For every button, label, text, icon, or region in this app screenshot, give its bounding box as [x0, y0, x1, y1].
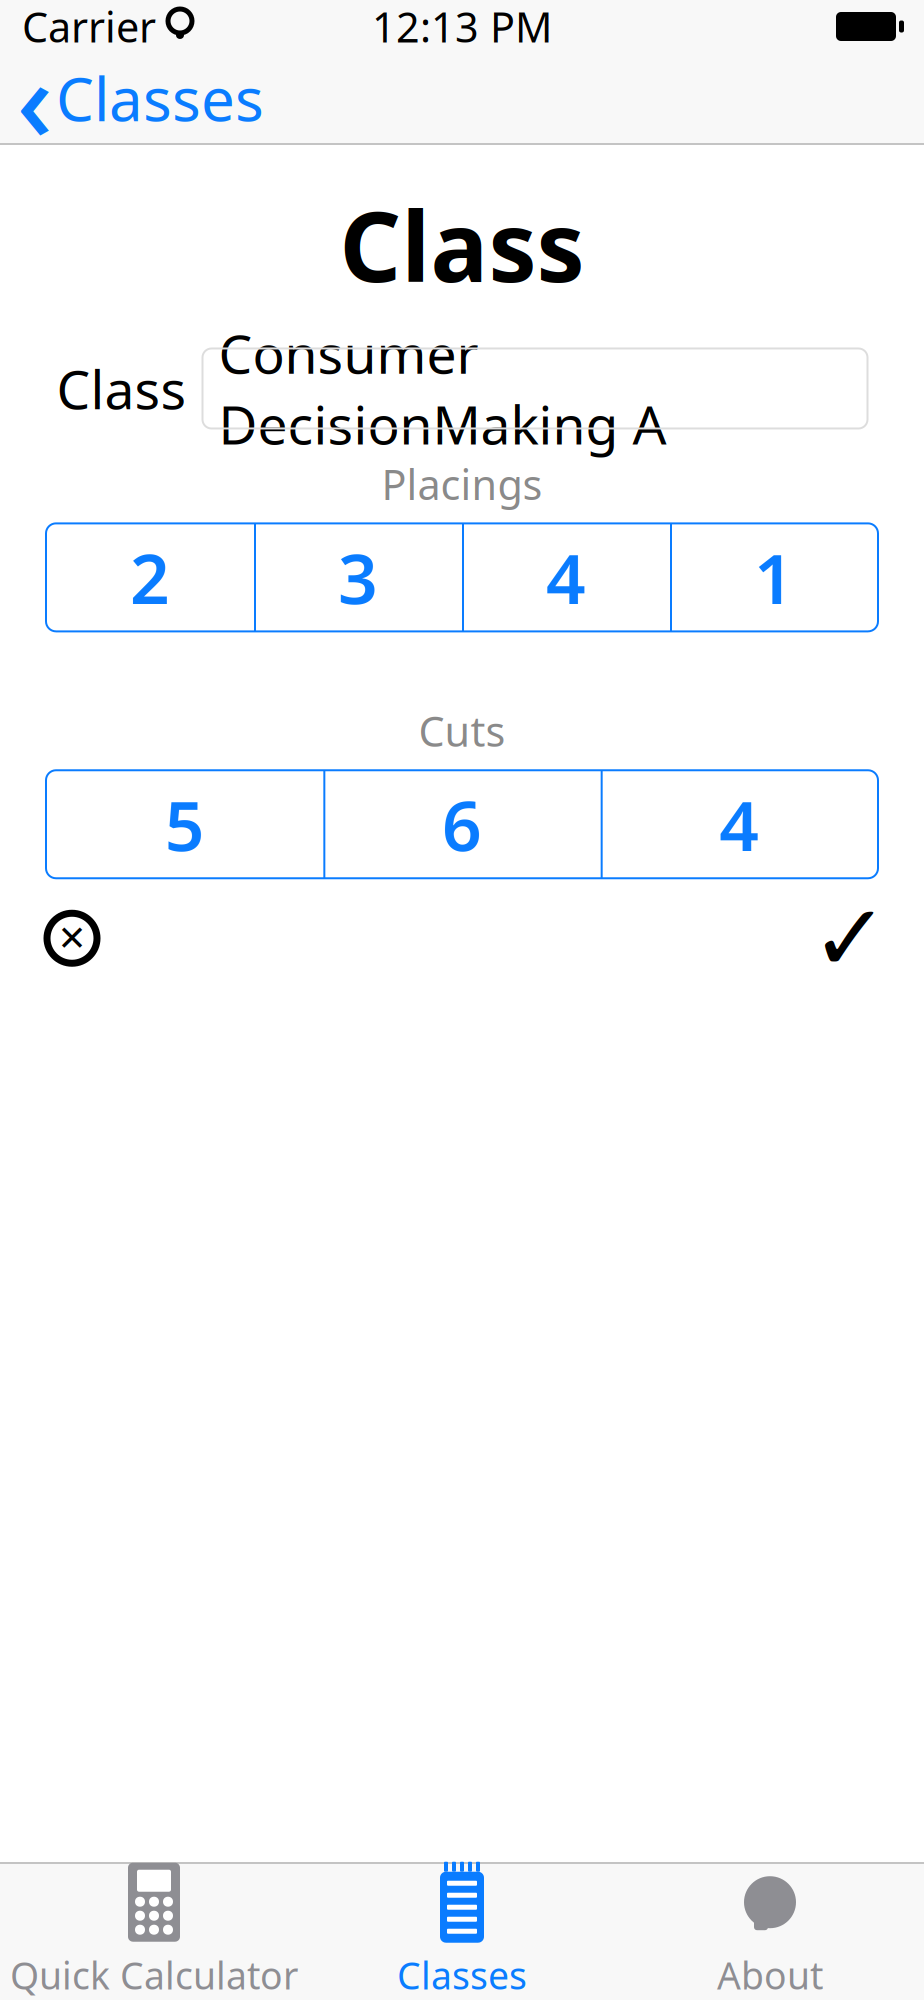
staticText: Cuts	[418, 703, 505, 758]
staticText: 2	[130, 531, 170, 623]
staticText: 4	[719, 778, 759, 870]
staticText: Quick Calculator	[10, 1950, 298, 2000]
button[interactable]: 4	[462, 523, 670, 631]
staticText: Carrier	[22, 0, 156, 54]
staticText: Class	[56, 353, 186, 424]
staticText: 4	[546, 531, 586, 623]
staticText: 3	[338, 531, 378, 623]
staticText: Placings	[381, 456, 542, 511]
button[interactable]: About	[616, 1864, 924, 2000]
staticText: Consumer DecisionMaking A	[218, 318, 666, 459]
button[interactable]: ‹	[0, 53, 284, 143]
staticText: 1	[754, 531, 794, 623]
button[interactable]: 2	[46, 523, 254, 631]
staticText: 5	[165, 778, 205, 870]
staticText: Classes	[397, 1950, 527, 2000]
button[interactable]: Quick Calculator	[0, 1864, 308, 2000]
staticText: 12:13 PM	[372, 0, 552, 54]
button[interactable]: 4	[601, 770, 878, 878]
staticText: Class	[339, 181, 584, 308]
staticText: ✓	[811, 885, 889, 991]
button[interactable]: Classes	[308, 1864, 616, 2000]
button[interactable]: 3	[254, 523, 462, 631]
staticText: ‹	[16, 24, 53, 172]
button[interactable]: Cancel	[44, 910, 100, 966]
staticText: Classes	[56, 58, 264, 138]
staticText: ✕	[57, 919, 86, 958]
button[interactable]: 6	[323, 770, 601, 878]
button[interactable]: Save	[820, 908, 880, 968]
staticText: 6	[442, 778, 482, 870]
button[interactable]: 1	[670, 523, 878, 631]
button[interactable]: 5	[46, 770, 323, 878]
staticText: About	[717, 1950, 823, 2000]
